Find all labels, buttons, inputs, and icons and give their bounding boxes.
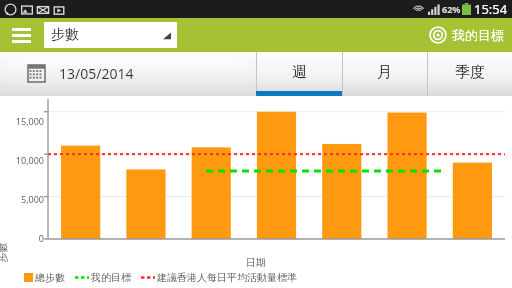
button[interactable]: 月 bbox=[342, 52, 427, 96]
button[interactable]: Menu bbox=[6, 20, 36, 50]
button[interactable]: 季度 bbox=[427, 52, 512, 96]
staticText: 62% bbox=[442, 3, 461, 15]
staticText: 5,000 bbox=[0, 193, 44, 205]
staticText: 步數 bbox=[0, 242, 8, 262]
staticText: 月 bbox=[377, 63, 392, 82]
staticText: 13/05/2014 bbox=[59, 64, 134, 83]
button[interactable]: 步數 bbox=[44, 22, 177, 48]
staticText: 我的目標 bbox=[452, 27, 504, 43]
staticText: 季度 bbox=[455, 63, 485, 82]
staticText: 步數 bbox=[51, 26, 79, 44]
button[interactable]: 13/05/2014 bbox=[8, 59, 248, 87]
staticText: 0 bbox=[0, 232, 44, 244]
button[interactable]: 週 bbox=[256, 52, 342, 96]
staticText: 總步數 bbox=[35, 271, 65, 284]
staticText: 15:54 bbox=[474, 0, 508, 18]
staticText: 建議香港人每日平均活動量標準 bbox=[157, 271, 297, 284]
staticText: 週 bbox=[292, 63, 307, 82]
button[interactable]: 我的目標 bbox=[429, 26, 504, 44]
staticText: 我的目標 bbox=[91, 271, 131, 284]
staticText: 10,000 bbox=[0, 154, 44, 166]
staticText: 日期 bbox=[246, 256, 266, 269]
staticText: 15,000 bbox=[0, 115, 44, 127]
